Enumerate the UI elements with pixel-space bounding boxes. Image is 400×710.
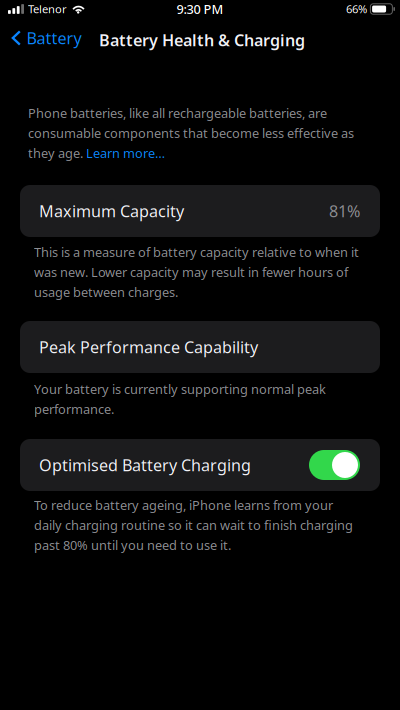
staticText: This is a measure of battery capacity re… — [34, 243, 359, 261]
staticText: To reduce battery ageing, iPhone learns … — [34, 496, 333, 514]
staticText: 81% — [329, 200, 360, 222]
staticText: Phone batteries, like all rechargeable b… — [28, 104, 327, 122]
staticText: Optimised Battery Charging — [39, 454, 251, 476]
button[interactable]: Peak Performance Capability — [20, 321, 380, 373]
staticText: past 80% until you need to use it. — [34, 536, 231, 554]
button[interactable]: Maximum Capacity — [20, 185, 380, 237]
staticText: 9:30 PM — [176, 0, 223, 18]
staticText: Peak Performance Capability — [39, 336, 258, 358]
button[interactable]: Learn more… — [86, 144, 165, 162]
staticText: daily charging routine so it can wait to… — [34, 516, 353, 534]
staticText: was new. Lower capacity may result in fe… — [34, 263, 348, 281]
staticText: 66% — [346, 1, 367, 17]
staticText: Telenor — [28, 1, 67, 17]
staticText: Maximum Capacity — [39, 200, 184, 222]
staticText: performance. — [34, 400, 114, 418]
button[interactable]: Battery — [0, 20, 90, 56]
staticText: Battery — [26, 27, 81, 49]
staticText: Learn more… — [86, 144, 165, 162]
button[interactable]: Optimised Battery Charging — [309, 450, 360, 480]
staticText: consumable components that become less e… — [28, 124, 354, 142]
staticText: usage between charges. — [34, 283, 178, 301]
staticText: Your battery is currently supporting nor… — [34, 380, 326, 398]
staticText: they age. — [28, 144, 86, 162]
staticText: Battery Health & Charging — [99, 29, 305, 51]
